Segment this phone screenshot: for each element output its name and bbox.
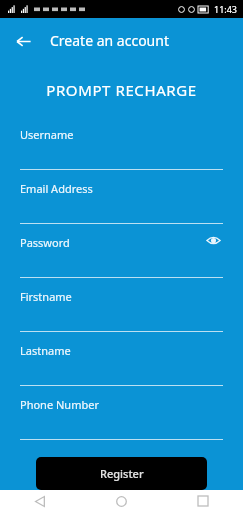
button[interactable]: Home <box>81 490 162 512</box>
staticText: PROMPT RECHARGE <box>0 80 243 100</box>
button[interactable]: Username <box>20 116 223 170</box>
staticText: Phone Number <box>20 397 99 412</box>
button[interactable]: Recent apps <box>162 490 243 512</box>
staticText: Email Address <box>20 181 93 196</box>
button[interactable]: Email Address <box>20 170 223 224</box>
button[interactable]: Show password <box>203 230 223 250</box>
staticText: Firstname <box>20 289 72 304</box>
staticText: 11:43 <box>214 3 238 15</box>
button[interactable]: Phone Number <box>20 386 223 440</box>
staticText: Username <box>20 127 74 142</box>
button[interactable]: Lastname <box>20 332 223 386</box>
staticText: Password <box>20 235 70 250</box>
staticText: Register <box>100 466 144 481</box>
button[interactable]: Back <box>7 25 39 57</box>
button[interactable]: Register <box>36 457 207 490</box>
button[interactable]: Password <box>20 224 223 278</box>
button[interactable]: Back <box>0 490 81 512</box>
staticText: Create an account <box>50 31 169 50</box>
button[interactable]: Firstname <box>20 278 223 332</box>
staticText: Lastname <box>20 343 71 358</box>
